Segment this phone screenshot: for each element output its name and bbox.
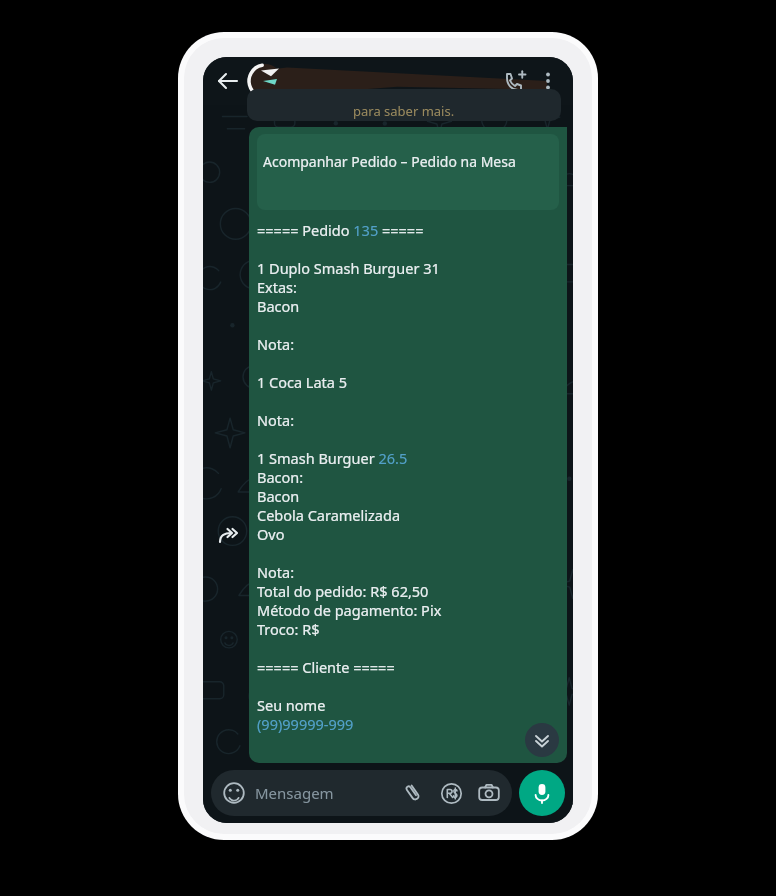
button[interactable]: Encaminhada bbox=[215, 523, 243, 551]
button[interactable]: Rolar para baixo bbox=[525, 723, 559, 757]
button[interactable] bbox=[247, 57, 499, 105]
button[interactable]: Acompanhar Pedido – Pedido na Mesa bbox=[257, 134, 559, 210]
staticText: Acompanhar Pedido – Pedido na Mesa bbox=[263, 152, 516, 171]
staticText: ===== Pedido 135 ===== 1 Duplo Smash Bur… bbox=[257, 220, 487, 755]
button[interactable]: Anexar bbox=[400, 780, 426, 806]
button[interactable]: Gravar áudio bbox=[519, 770, 565, 816]
button[interactable]: Pagamento bbox=[438, 780, 464, 806]
button[interactable]: Mais opções bbox=[533, 66, 563, 96]
button[interactable]: Adicionar chamada bbox=[499, 64, 533, 98]
staticText: para saber mais. bbox=[353, 102, 455, 120]
button[interactable]: Voltar bbox=[213, 66, 243, 96]
staticText: Mensagem bbox=[255, 783, 400, 803]
button[interactable]: Mensagem bbox=[211, 770, 512, 816]
button[interactable]: Acompanhar Pedido – Pedido na Mesa bbox=[249, 127, 567, 763]
button[interactable]: Câmera bbox=[476, 780, 502, 806]
